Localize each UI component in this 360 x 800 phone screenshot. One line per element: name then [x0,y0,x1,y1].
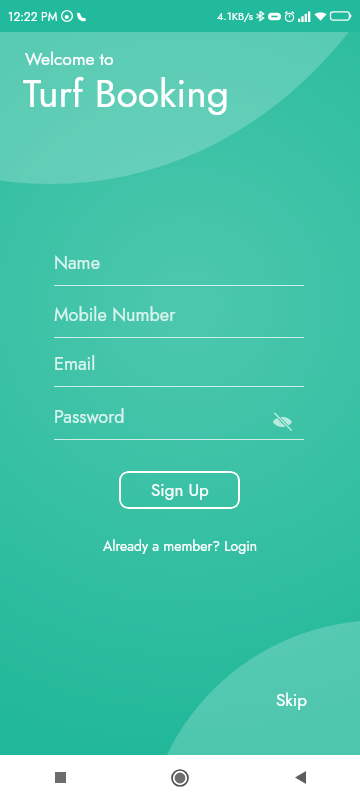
staticText: Name [54,250,100,276]
staticText: Welcome to [25,46,114,71]
staticText: Skip [276,688,307,713]
button[interactable]: Already a member? Login [97,533,264,559]
staticText: 12:22 PM [8,8,58,25]
button[interactable]: Home [120,755,240,800]
staticText: Sign Up [151,478,209,503]
staticText: 4.1KB/s [217,8,253,24]
staticText: Email [54,351,96,377]
staticText: Mobile Number [54,302,176,328]
staticText: Already a member? Login [103,536,258,556]
button[interactable]: Name [54,250,304,282]
button[interactable]: Back [240,755,360,800]
button[interactable]: Skip [270,684,313,717]
button[interactable]: Recent apps [0,755,120,800]
other: Show password [272,411,293,432]
staticText: Password [54,404,125,430]
button[interactable]: Email [54,351,304,383]
staticText: Turf Booking [23,65,230,121]
button[interactable]: Password [54,404,304,436]
button[interactable]: Mobile Number [54,302,304,334]
button[interactable]: Sign Up [119,471,240,509]
